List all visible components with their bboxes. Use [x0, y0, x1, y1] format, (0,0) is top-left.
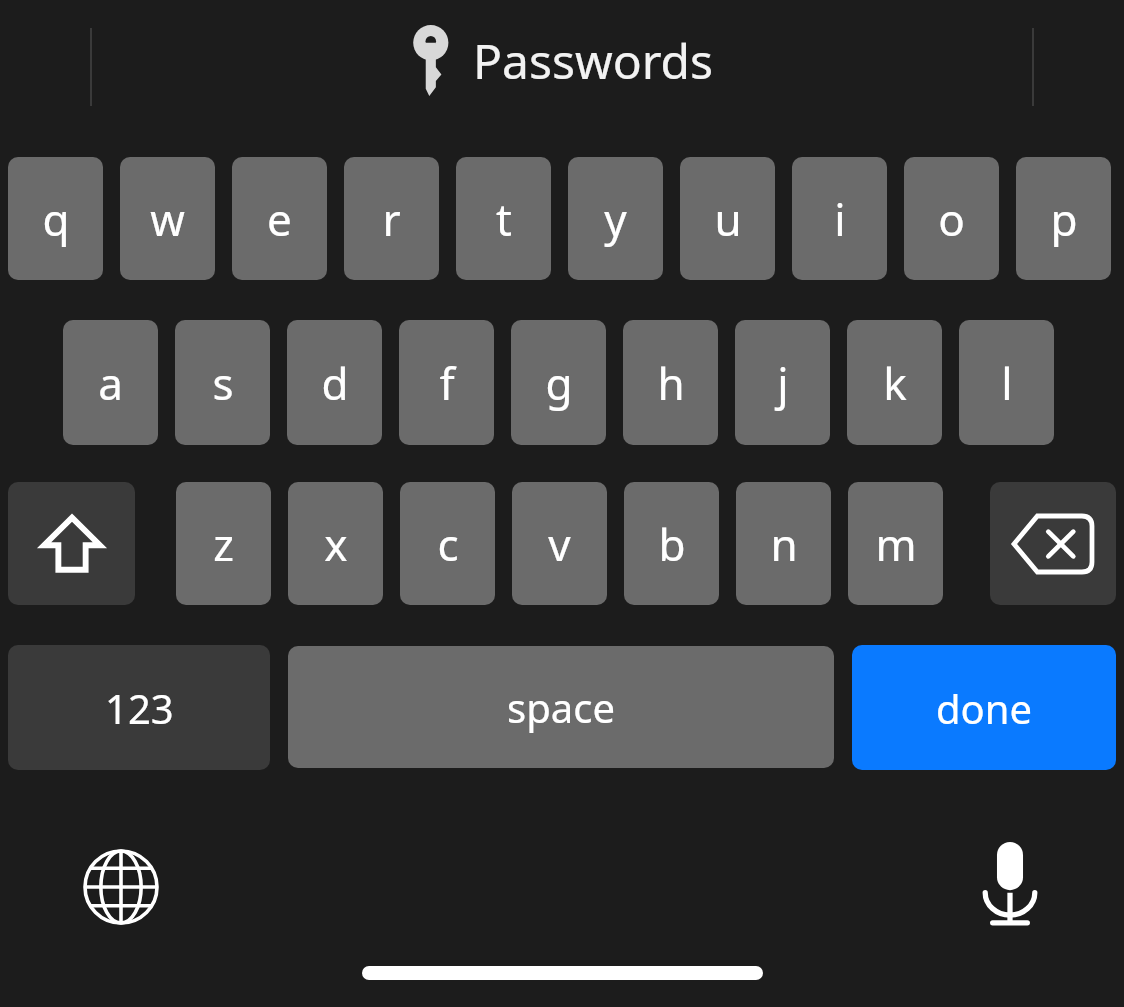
button[interactable]: m — [848, 482, 943, 605]
button[interactable]: x — [288, 482, 383, 605]
staticText: g — [545, 353, 573, 413]
button[interactable]: q — [8, 157, 103, 280]
staticText: d — [321, 353, 349, 413]
staticText: m — [875, 514, 917, 574]
staticText: s — [212, 353, 234, 413]
staticText: z — [213, 514, 234, 574]
other: Passwords key — [411, 24, 455, 96]
button[interactable]: r — [344, 157, 439, 280]
staticText: u — [714, 189, 742, 249]
button[interactable]: a — [63, 320, 158, 445]
button[interactable]: u — [680, 157, 775, 280]
button[interactable]: b — [624, 482, 719, 605]
staticText: x — [324, 514, 348, 574]
staticText: done — [936, 681, 1033, 735]
staticText: f — [439, 353, 455, 413]
button[interactable]: c — [400, 482, 495, 605]
staticText: p — [1050, 189, 1078, 249]
staticText: l — [1001, 353, 1013, 413]
button[interactable]: Backspace — [990, 482, 1116, 605]
staticText: c — [437, 514, 459, 574]
staticText: r — [382, 189, 401, 249]
button[interactable]: d — [287, 320, 382, 445]
button[interactable]: Dictate — [965, 835, 1055, 935]
button[interactable]: done — [852, 645, 1116, 770]
staticText: i — [834, 189, 846, 249]
staticText: y — [604, 189, 627, 249]
button[interactable]: t — [456, 157, 551, 280]
button[interactable]: Change keyboard language — [76, 842, 166, 932]
button[interactable]: i — [792, 157, 887, 280]
button[interactable]: o — [904, 157, 999, 280]
staticText: k — [883, 353, 907, 413]
button[interactable]: y — [568, 157, 663, 280]
staticText: e — [267, 189, 292, 249]
button[interactable]: Shift — [8, 482, 135, 605]
button[interactable]: g — [511, 320, 606, 445]
button[interactable]: e — [232, 157, 327, 280]
staticText: o — [938, 189, 965, 249]
button[interactable]: s — [175, 320, 270, 445]
button[interactable]: v — [512, 482, 607, 605]
button[interactable]: space — [288, 646, 834, 768]
staticText: w — [150, 189, 185, 249]
staticText: q — [42, 189, 70, 249]
button[interactable]: 123 — [8, 645, 270, 770]
staticText: n — [770, 514, 798, 574]
button[interactable]: n — [736, 482, 831, 605]
button[interactable]: Passwords key — [411, 24, 714, 96]
staticText: h — [657, 353, 685, 413]
button[interactable]: l — [959, 320, 1054, 445]
button[interactable]: z — [176, 482, 271, 605]
staticText: 123 — [105, 681, 174, 735]
staticText: j — [777, 353, 789, 413]
button[interactable]: j — [735, 320, 830, 445]
button[interactable]: h — [623, 320, 718, 445]
button[interactable]: p — [1016, 157, 1111, 280]
staticText: Passwords — [473, 28, 714, 93]
button[interactable]: f — [399, 320, 494, 445]
button[interactable]: w — [120, 157, 215, 280]
staticText: b — [658, 514, 686, 574]
button[interactable]: k — [847, 320, 942, 445]
staticText: a — [98, 353, 123, 413]
staticText: t — [496, 189, 512, 249]
staticText: v — [548, 514, 571, 574]
staticText: space — [507, 680, 615, 734]
